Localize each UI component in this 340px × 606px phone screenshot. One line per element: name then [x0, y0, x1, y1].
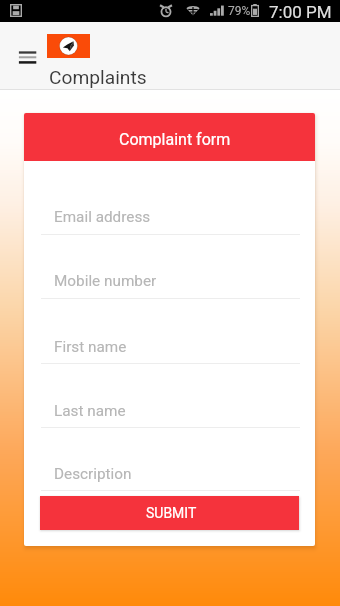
button[interactable]: Last name	[41, 402, 300, 428]
staticText: Complaint form	[119, 130, 231, 149]
button[interactable]: Email address	[41, 208, 300, 234]
staticText: 79%	[228, 4, 251, 18]
button[interactable]: Mobile number	[41, 272, 300, 298]
staticText: Description	[54, 465, 132, 483]
button[interactable]: Open navigation menu	[15, 42, 41, 68]
staticText: SUBMIT	[146, 505, 197, 521]
button[interactable]: App logo	[47, 34, 90, 58]
button[interactable]: Description	[41, 465, 300, 491]
staticText: First name	[54, 338, 127, 356]
staticText: Last name	[54, 402, 126, 420]
staticText: Email address	[54, 208, 151, 226]
button[interactable]: Complaint form	[24, 113, 315, 161]
staticText: 7:00 PM	[269, 2, 332, 22]
staticText: Mobile number	[54, 272, 157, 290]
button[interactable]: First name	[41, 338, 300, 364]
staticText: Complaints	[49, 66, 147, 89]
button[interactable]: SUBMIT	[40, 496, 299, 530]
